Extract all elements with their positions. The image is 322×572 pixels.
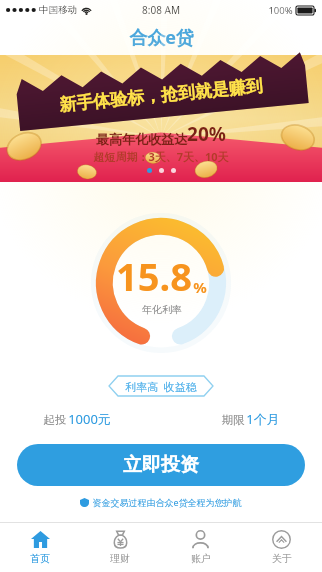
staticText: 首页 — [30, 552, 50, 565]
staticText: 账户 — [191, 552, 211, 565]
staticText: 100% — [268, 4, 293, 17]
staticText: 理财 — [110, 552, 130, 565]
staticText: 中国移动 — [39, 4, 77, 16]
button[interactable]: 理财 — [80, 523, 160, 572]
staticText: 立即投资 — [123, 453, 199, 477]
staticText: 起投 — [42, 412, 68, 428]
staticText: 20% — [187, 121, 226, 147]
staticText: 资金交易过程由合众e贷全程为您护航 — [92, 496, 242, 508]
staticText: 年化利率 — [142, 303, 182, 316]
staticText: 15.8 — [116, 250, 192, 302]
staticText: 合众e贷 — [129, 25, 194, 50]
button[interactable]: 利率高 收益稳 — [109, 376, 213, 396]
button[interactable]: 关于 — [241, 523, 322, 572]
staticText: 1000元 — [68, 410, 111, 428]
staticText: 关于 — [272, 552, 292, 565]
staticText: % — [193, 277, 207, 297]
button[interactable]: 立即投资 — [17, 444, 305, 486]
button[interactable]: 首页 — [0, 523, 80, 572]
button[interactable]: 新手体验标，抢到就是赚到 — [0, 55, 322, 182]
staticText: 最高年化收益达 — [96, 131, 187, 147]
staticText: 期限 — [220, 412, 246, 428]
staticText: 利率高 收益稳 — [125, 379, 197, 394]
staticText: 1个月 — [246, 410, 280, 428]
staticText: 8:08 AM — [142, 3, 180, 17]
button[interactable]: 账户 — [160, 523, 241, 572]
staticText: 超短周期：3天、7天、10天 — [93, 149, 229, 164]
staticText: 新手体验标，抢到就是赚到 — [58, 75, 264, 116]
